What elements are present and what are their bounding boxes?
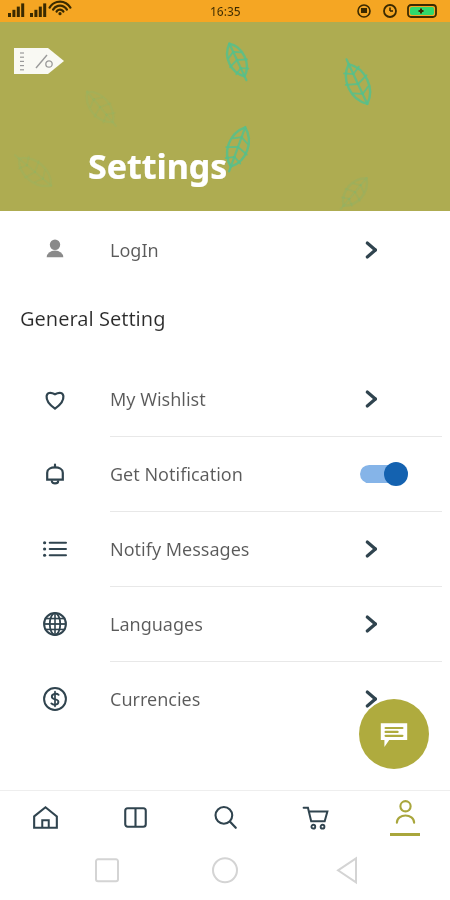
staticText: LogIn bbox=[110, 238, 360, 263]
button[interactable]: Catalog bbox=[90, 790, 180, 845]
staticText: Currencies bbox=[110, 687, 360, 712]
button[interactable]: Search bbox=[180, 790, 270, 845]
button[interactable]: Home bbox=[0, 790, 90, 845]
button[interactable]: Toggle notifications bbox=[360, 462, 408, 486]
staticText: My Wishlist bbox=[110, 387, 360, 412]
staticText: Get Notification bbox=[110, 462, 360, 487]
button[interactable]: Cart bbox=[270, 790, 360, 845]
button[interactable]: LogIn bbox=[0, 217, 450, 283]
button[interactable]: Chat support bbox=[359, 699, 429, 769]
button[interactable]: Currencies bbox=[0, 662, 450, 736]
staticText: 16:35 bbox=[210, 3, 241, 19]
button[interactable]: Account bbox=[360, 790, 450, 845]
staticText: Languages bbox=[110, 612, 360, 637]
button[interactable]: Languages bbox=[0, 587, 450, 661]
staticText: Notify Messages bbox=[110, 537, 360, 562]
button[interactable]: Notify Messages bbox=[0, 512, 450, 586]
staticText: Settings bbox=[88, 143, 228, 189]
button[interactable]: Get Notification bbox=[0, 437, 450, 511]
staticText: General Setting bbox=[20, 305, 166, 332]
button[interactable]: My Wishlist bbox=[0, 362, 450, 436]
